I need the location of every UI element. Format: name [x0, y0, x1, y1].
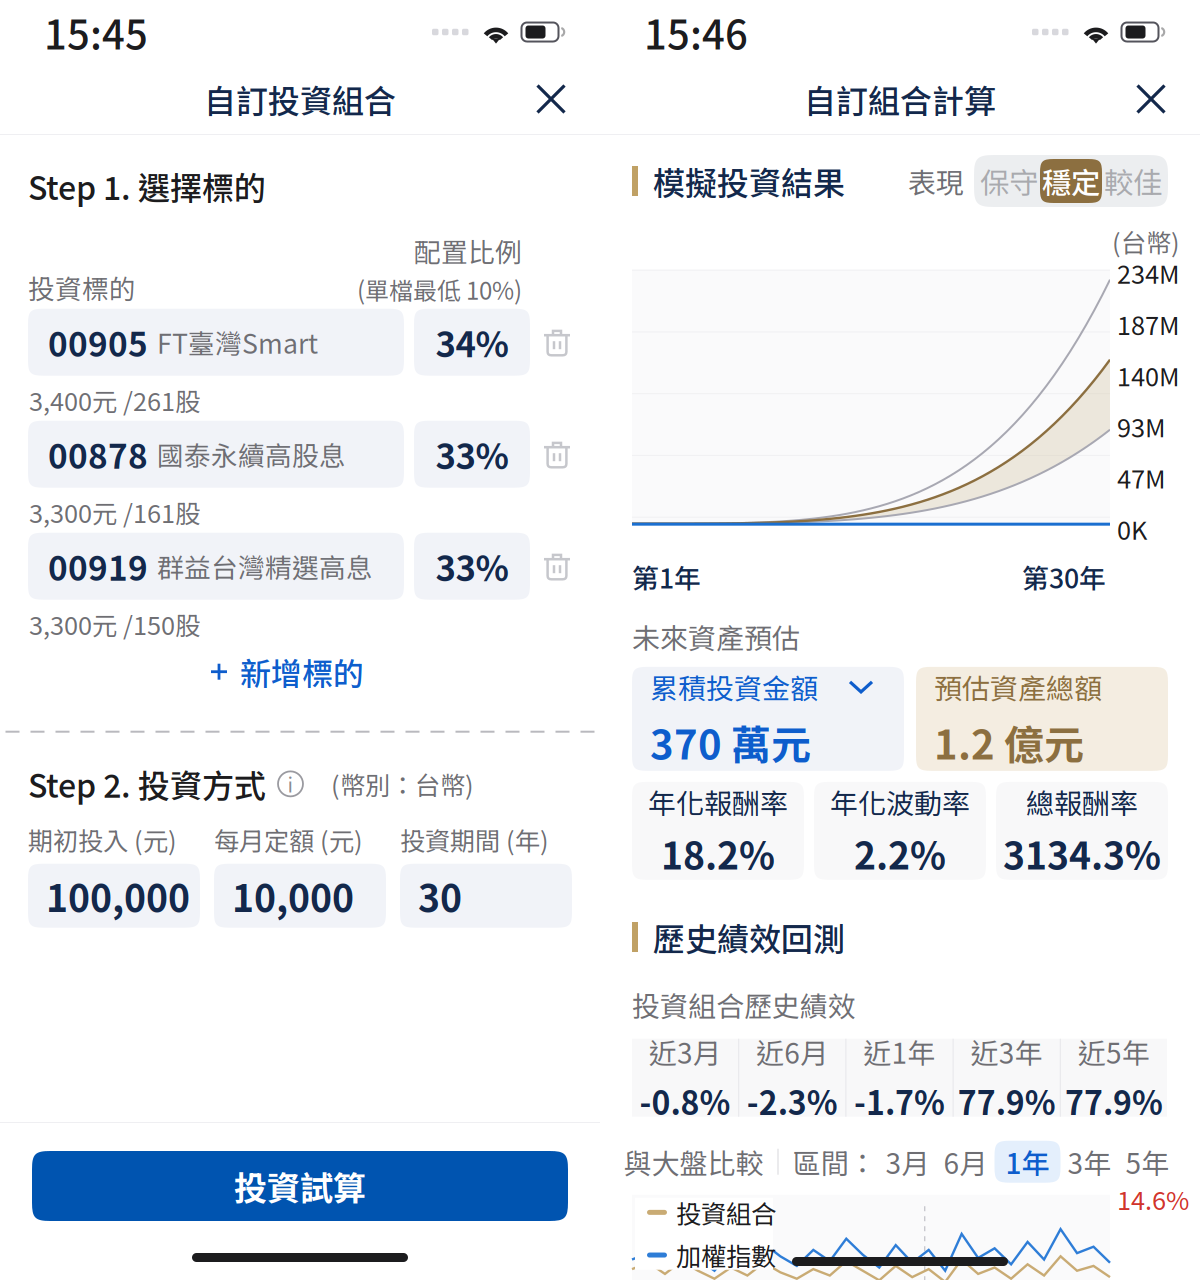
- staticText: 累積投資金額: [650, 667, 818, 707]
- staticText: 與大盤比較: [623, 1141, 763, 1182]
- staticText: 表現: [908, 161, 964, 201]
- staticText: 加權指數: [676, 1237, 776, 1273]
- staticText: 自訂組合計算: [804, 76, 996, 122]
- staticText: 穩定: [1042, 160, 1100, 202]
- staticText: 00905: [48, 318, 148, 366]
- staticText: 國泰永續高股息: [157, 435, 346, 473]
- staticText: 33%: [435, 429, 508, 479]
- staticText: -2.3%: [747, 1078, 838, 1124]
- staticText: 3,300元 /161股: [29, 494, 200, 530]
- staticText: 187M: [1117, 305, 1180, 342]
- staticText: 3年: [1067, 1141, 1111, 1182]
- button[interactable]: 投資試算: [32, 1151, 568, 1221]
- button[interactable]: Delete 00878: [540, 421, 574, 488]
- staticText: 00919: [48, 542, 148, 590]
- button[interactable]: 較佳: [1102, 159, 1164, 203]
- staticText: 10,000: [232, 869, 354, 923]
- staticText: 14.6%: [1117, 1181, 1189, 1217]
- staticText: (幣別：台幣): [331, 765, 474, 802]
- staticText: 區間：: [792, 1141, 876, 1182]
- staticText: 15:46: [644, 3, 748, 61]
- staticText: 年化波動率: [830, 781, 970, 822]
- staticText: 2.2%: [854, 826, 946, 880]
- button[interactable]: Close: [1124, 72, 1178, 126]
- button[interactable]: Delete 00905: [540, 309, 574, 376]
- button[interactable]: 5年: [1118, 1141, 1176, 1183]
- staticText: 1年: [1005, 1141, 1049, 1182]
- staticText: 33%: [435, 541, 508, 591]
- staticText: 投資標的: [28, 268, 136, 307]
- staticText: 100,000: [46, 869, 190, 923]
- button[interactable]: 穩定: [1040, 159, 1102, 203]
- staticText: 每月定額 (元): [214, 821, 363, 858]
- staticText: 配置比例: [414, 231, 522, 270]
- staticText: FT臺灣Smart: [157, 323, 318, 361]
- staticText: 保守: [980, 160, 1038, 202]
- button[interactable]: Delete 00919: [540, 533, 574, 600]
- staticText: 投資組合: [676, 1194, 776, 1231]
- staticText: 1.2 億元: [934, 713, 1084, 771]
- staticText: 第1年: [632, 558, 701, 596]
- staticText: 370 萬元: [650, 713, 811, 771]
- staticText: 0K: [1117, 510, 1147, 547]
- staticText: 近1年: [863, 1031, 935, 1072]
- button[interactable]: 3月: [878, 1141, 936, 1183]
- staticText: -1.7%: [854, 1078, 945, 1124]
- staticText: 47M: [1117, 459, 1166, 496]
- staticText: 77.9%: [958, 1078, 1056, 1124]
- staticText: 新增標的: [240, 649, 364, 694]
- staticText: 234M: [1117, 254, 1180, 291]
- staticText: 近3年: [971, 1031, 1043, 1072]
- staticText: 93M: [1117, 408, 1166, 445]
- staticText: 77.9%: [1065, 1078, 1163, 1124]
- staticText: 30: [418, 869, 462, 923]
- staticText: i: [287, 769, 293, 798]
- button[interactable]: 6月: [936, 1141, 994, 1183]
- staticText: 5年: [1125, 1141, 1169, 1182]
- staticText: 較佳: [1104, 160, 1162, 202]
- button[interactable]: 1年: [994, 1141, 1060, 1183]
- staticText: (台幣): [1112, 223, 1180, 260]
- staticText: 群益台灣精選高息: [157, 547, 373, 585]
- button[interactable]: 3年: [1060, 1141, 1118, 1183]
- staticText: 自訂投資組合: [204, 76, 396, 122]
- staticText: 預估資產總額: [934, 667, 1102, 707]
- staticText: 3,400元 /261股: [29, 382, 200, 418]
- staticText: 3134.3%: [1003, 826, 1161, 880]
- staticText: 18.2%: [661, 826, 775, 880]
- staticText: 投資期間 (年): [400, 821, 549, 858]
- staticText: 期初投入 (元): [28, 821, 177, 858]
- staticText: 34%: [435, 317, 508, 367]
- button[interactable]: 保守: [978, 159, 1040, 203]
- staticText: 近3月: [649, 1031, 721, 1072]
- staticText: 3月: [885, 1141, 929, 1182]
- staticText: 年化報酬率: [648, 781, 788, 822]
- button[interactable]: Close: [524, 72, 578, 126]
- staticText: 投資組合歷史績效: [632, 984, 856, 1025]
- staticText: 近6月: [756, 1031, 828, 1072]
- staticText: 00878: [48, 430, 148, 478]
- staticText: 3,300元 /150股: [29, 606, 200, 642]
- staticText: 15:45: [44, 3, 148, 61]
- staticText: 第30年: [1022, 558, 1106, 596]
- staticText: 6月: [943, 1141, 987, 1182]
- staticText: 歷史績效回測: [653, 914, 845, 960]
- staticText: 近5年: [1078, 1031, 1150, 1072]
- staticText: 總報酬率: [1026, 781, 1138, 822]
- staticText: -0.8%: [640, 1078, 731, 1124]
- staticText: (單檔最低 10%): [357, 272, 522, 307]
- button[interactable]: 新增標的: [28, 644, 546, 700]
- staticText: Step 2. 投資方式: [28, 761, 266, 807]
- staticText: 投資試算: [234, 1162, 366, 1210]
- staticText: 模擬投資結果: [653, 158, 845, 204]
- staticText: 未來資產預估: [632, 616, 800, 657]
- staticText: Step 1. 選擇標的: [28, 163, 266, 209]
- staticText: 140M: [1117, 357, 1180, 393]
